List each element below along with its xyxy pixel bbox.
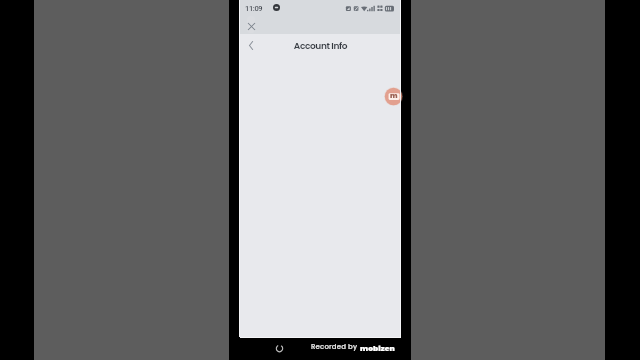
- staticText: Recorded by: [311, 342, 358, 352]
- button[interactable]: Close: [243, 18, 259, 34]
- staticText: m: [390, 91, 398, 101]
- staticText: Account Info: [240, 40, 401, 53]
- button[interactable]: Recents: [273, 342, 286, 355]
- staticText: mobizen: [360, 343, 395, 353]
- staticText: 11:09: [245, 4, 263, 13]
- button[interactable]: Mobizen recorder: [384, 87, 403, 106]
- button[interactable]: Back: [243, 37, 259, 53]
